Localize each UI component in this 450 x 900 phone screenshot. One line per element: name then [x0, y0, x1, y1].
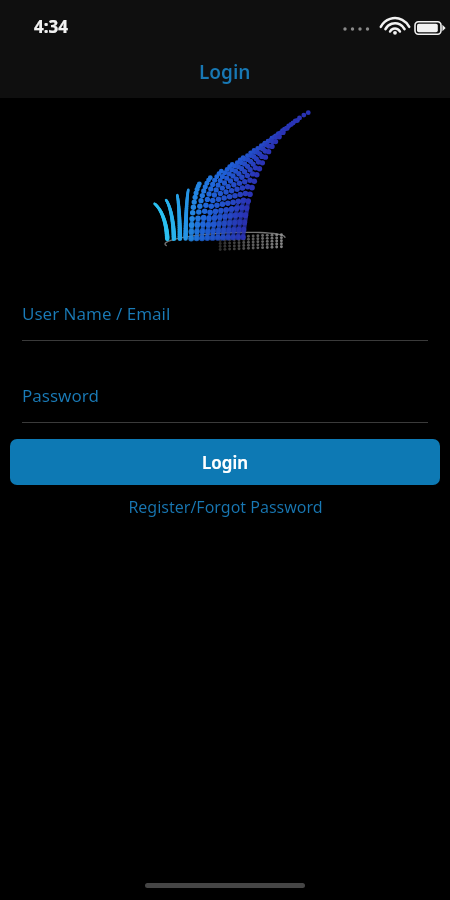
- staticText: Login: [202, 451, 249, 474]
- staticText: 4:34: [34, 15, 68, 38]
- button[interactable]: Password: [22, 384, 428, 423]
- button[interactable]: Register/Forgot Password: [0, 496, 450, 518]
- button[interactable]: User Name / Email: [22, 302, 428, 341]
- button[interactable]: Login: [10, 439, 440, 485]
- staticText: Password: [22, 384, 99, 407]
- staticText: Register/Forgot Password: [128, 496, 323, 518]
- staticText: User Name / Email: [22, 302, 171, 325]
- staticText: Login: [199, 59, 251, 85]
